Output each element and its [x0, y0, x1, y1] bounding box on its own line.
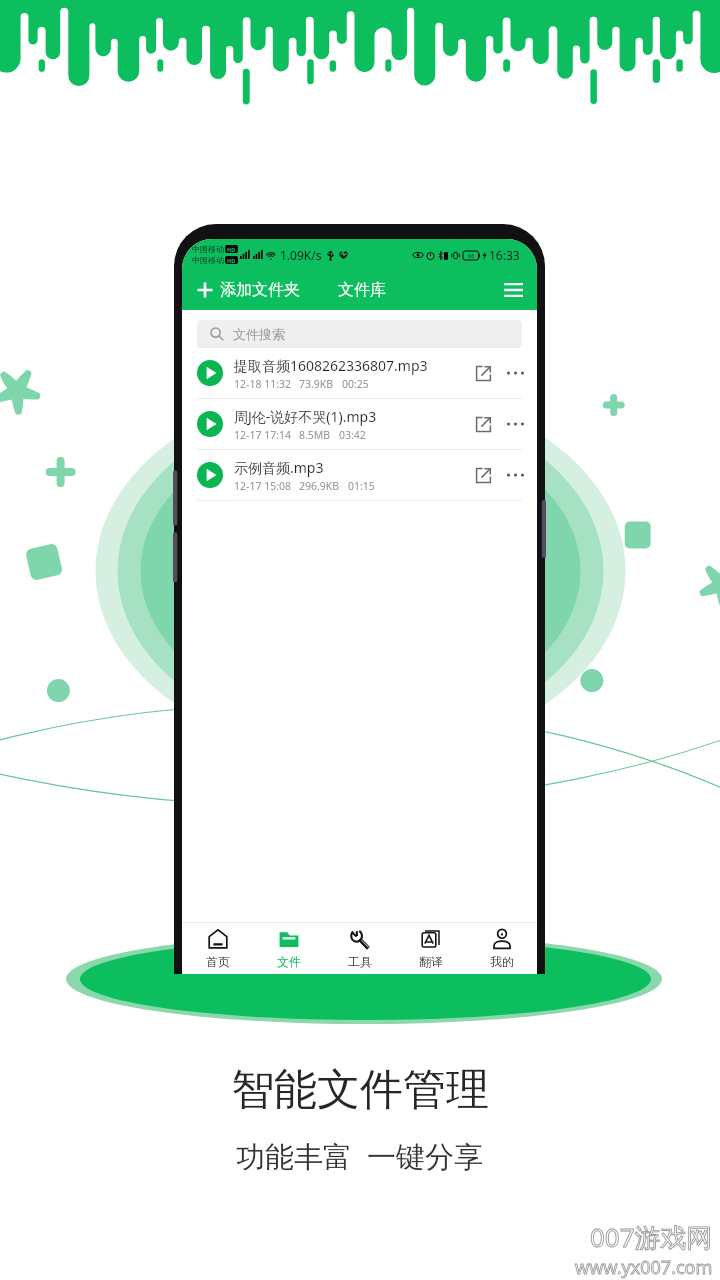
staticText: 首页	[206, 954, 230, 969]
button[interactable]: 翻译	[395, 923, 466, 974]
staticText: 73.9KB	[299, 377, 334, 391]
staticText: 66	[468, 252, 475, 259]
staticText: 翻译	[419, 954, 443, 969]
button[interactable]: 提取音频1608262336807.mp3	[182, 348, 537, 398]
button[interactable]: Share	[469, 410, 497, 438]
button[interactable]: Share	[469, 359, 497, 387]
staticText: 01:15	[348, 479, 375, 493]
button[interactable]: Menu	[500, 277, 526, 303]
staticText: 00:25	[342, 377, 369, 391]
button[interactable]: 我的	[466, 923, 537, 974]
staticText: 功能丰富 一键分享	[236, 1136, 484, 1176]
staticText: 中国移动	[192, 244, 224, 254]
staticText: 我的	[490, 954, 514, 969]
staticText: 添加文件夹	[220, 280, 300, 300]
button[interactable]: Share	[469, 461, 497, 489]
staticText: 03:42	[339, 428, 366, 442]
button[interactable]: 周J伦-说好不哭(1).mp3	[182, 399, 537, 449]
button[interactable]: 示例音频.mp3	[182, 450, 537, 500]
staticText: HD	[227, 246, 236, 253]
staticText: 12-17 15:08	[234, 479, 291, 493]
button[interactable]: 工具	[324, 923, 395, 974]
staticText: 8.5MB	[299, 428, 331, 442]
staticText: 16:33	[489, 247, 520, 263]
staticText: 1.09K/s	[280, 247, 322, 263]
staticText: 007游戏网	[590, 1219, 713, 1255]
staticText: HD	[227, 257, 236, 264]
staticText: 12-18 11:32	[234, 377, 291, 391]
staticText: www.yx007.com	[575, 1255, 713, 1280]
staticText: 示例音频.mp3	[234, 458, 324, 477]
button[interactable]: More options	[501, 461, 529, 489]
staticText: 周J伦-说好不哭(1).mp3	[234, 407, 377, 426]
button[interactable]: 首页	[182, 923, 253, 974]
staticText: 智能文件管理	[231, 1063, 489, 1117]
button[interactable]: 添加文件夹	[193, 275, 303, 305]
staticText: 中国移动	[192, 255, 224, 265]
staticText: 12-17 17:14	[234, 428, 291, 442]
staticText: 文件	[277, 954, 301, 969]
staticText: 文件搜索	[233, 326, 285, 342]
staticText: 296.9KB	[299, 479, 340, 493]
button[interactable]: More options	[501, 410, 529, 438]
staticText: 工具	[348, 954, 372, 969]
staticText: 文件库	[338, 280, 386, 300]
staticText: 提取音频1608262336807.mp3	[234, 356, 428, 375]
button[interactable]: 文件搜索	[197, 320, 522, 348]
button[interactable]: More options	[501, 359, 529, 387]
button[interactable]: 文件	[253, 923, 324, 974]
